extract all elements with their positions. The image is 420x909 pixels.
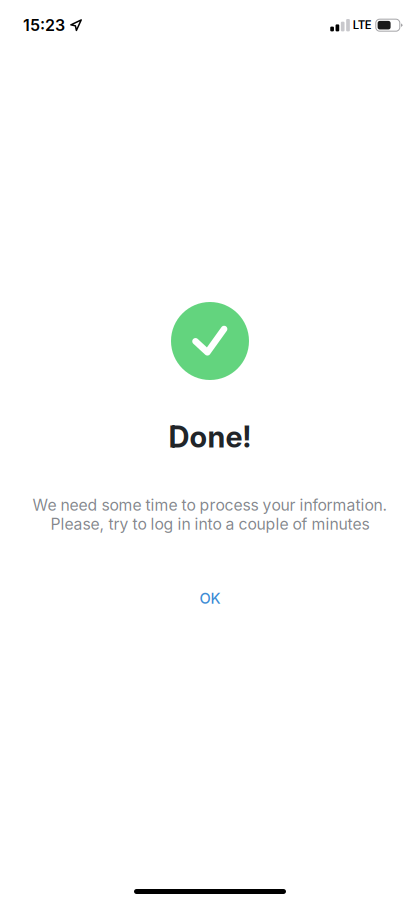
staticText: Please, try to log in into a couple of m…: [50, 514, 369, 533]
staticText: We need some time to process your inform…: [32, 495, 387, 514]
staticText: 15:23: [23, 15, 65, 35]
staticText: OK: [199, 590, 220, 607]
button[interactable]: OK: [159, 580, 260, 617]
staticText: LTE: [353, 18, 372, 32]
staticText: Done!: [168, 419, 251, 454]
